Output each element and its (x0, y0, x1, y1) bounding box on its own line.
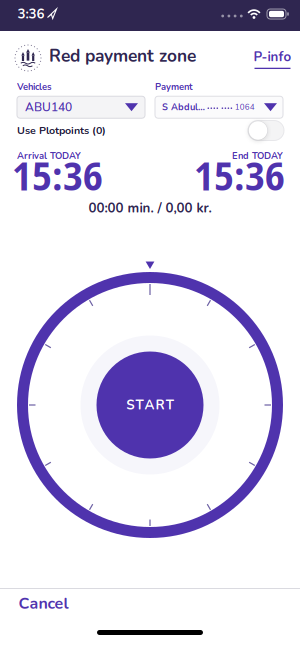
staticText: A (144, 396, 154, 414)
staticText: Payment (155, 81, 193, 93)
staticText: T (166, 396, 174, 414)
staticText: 15:36 (194, 148, 285, 202)
staticText: Cancel (18, 593, 68, 614)
button[interactable]: S (96, 351, 203, 458)
button[interactable]: P-info (253, 45, 291, 66)
staticText: Use Plotpoints (0) (17, 123, 106, 138)
staticText: R (156, 396, 165, 414)
staticText: 00:00 min. / 0,00 kr. (88, 199, 211, 217)
button[interactable]: Vehicles: ABU140 (17, 96, 145, 118)
staticText: 1064 (235, 102, 255, 112)
staticText: P-info (253, 48, 291, 66)
staticText: End TODAY (232, 150, 283, 162)
button[interactable]: Payment: S Abdul 1064 (155, 96, 283, 118)
staticText: Red payment zone (49, 44, 196, 68)
staticText: S (126, 396, 134, 414)
staticText: Vehicles (17, 81, 52, 93)
staticText: Arrival TODAY (17, 150, 81, 162)
staticText: ABU140 (25, 99, 72, 115)
staticText: 3:36 (17, 5, 44, 23)
staticText: S Abdul… (162, 101, 205, 113)
staticText: 15:36 (12, 148, 103, 202)
staticText: T (135, 396, 143, 414)
button[interactable]: Use Plotpoints (248, 120, 284, 140)
button[interactable]: Cancel (0, 585, 80, 622)
